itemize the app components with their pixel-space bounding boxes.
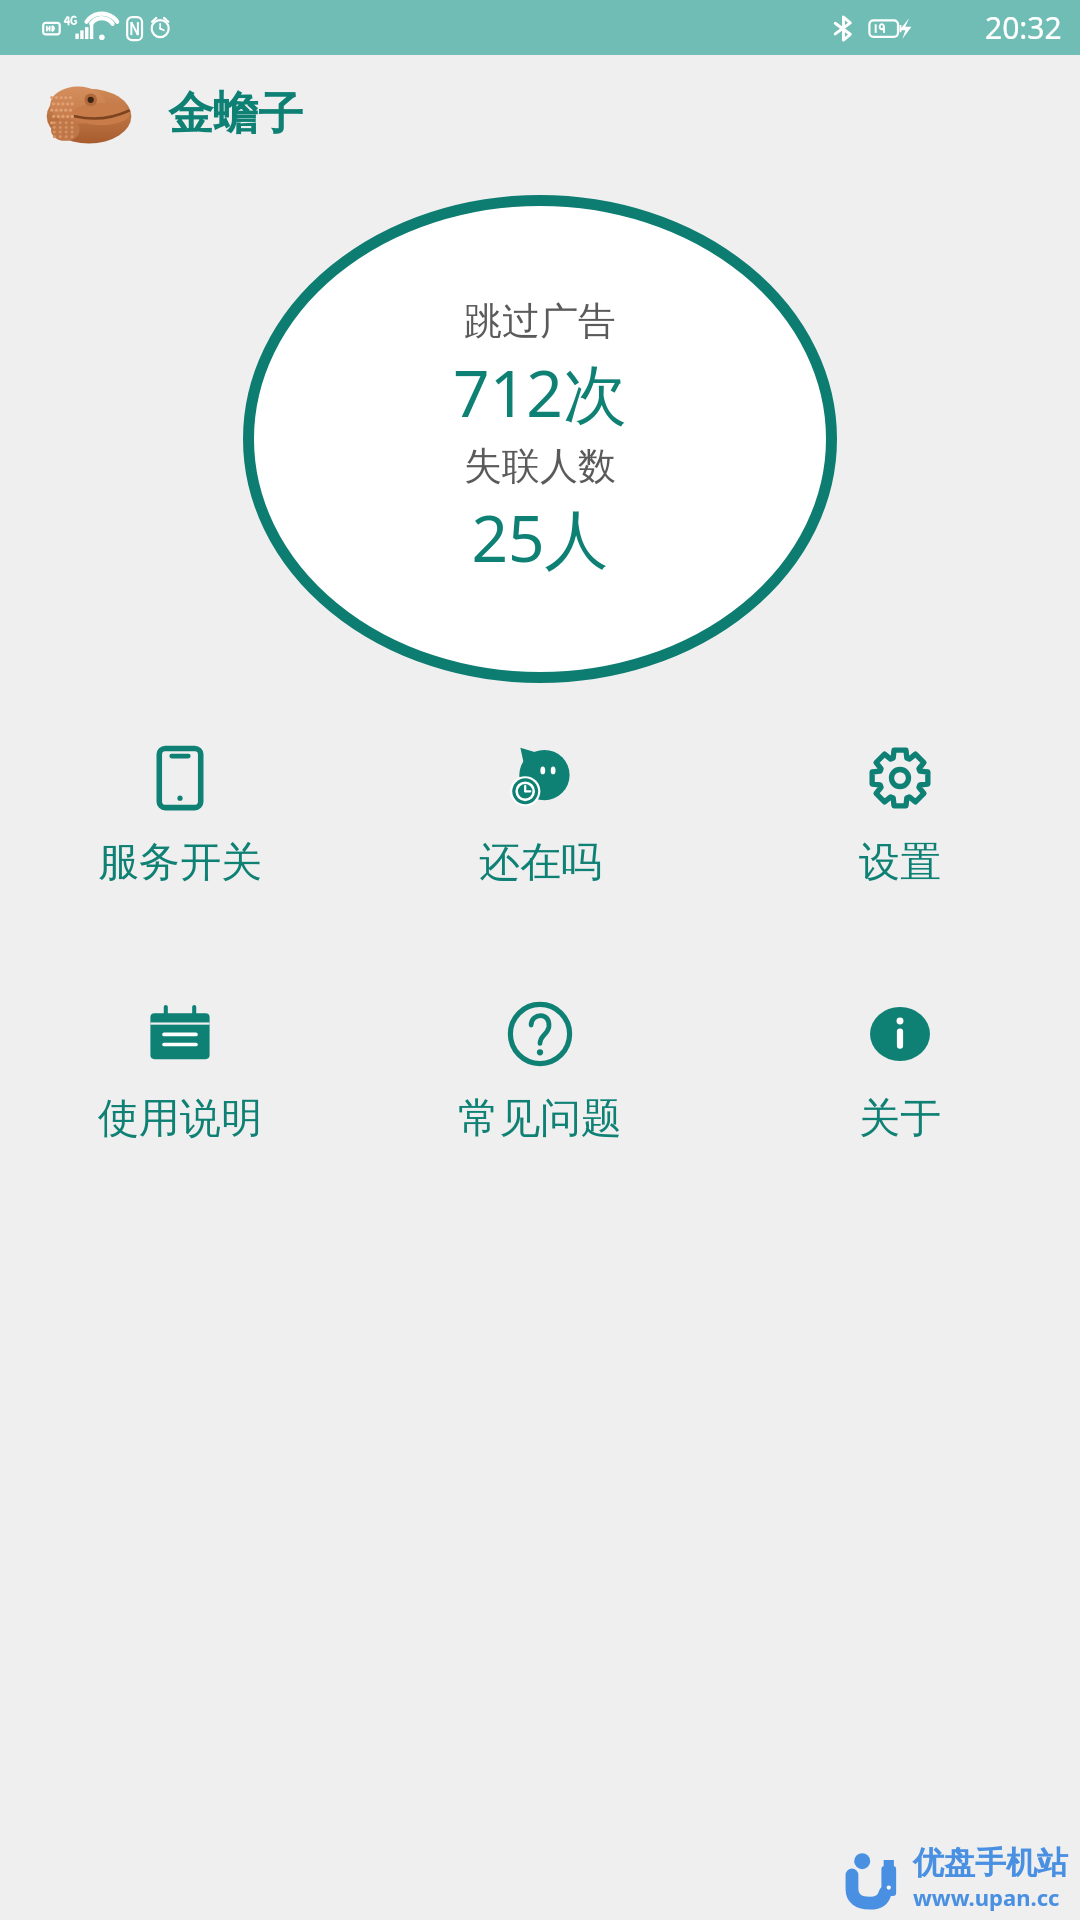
staticText: 20:32 xyxy=(985,7,1062,48)
staticText: 常见问题 xyxy=(458,1093,622,1145)
other: 常见问题 xyxy=(503,997,577,1071)
other: 还在吗 xyxy=(503,741,577,815)
button[interactable]: 关于 xyxy=(720,989,1080,1153)
staticText: 25人 xyxy=(471,494,609,581)
staticText: 服务开关 xyxy=(98,837,262,889)
staticText: 金蟾子 xyxy=(168,86,303,143)
other: 设置 xyxy=(863,741,937,815)
staticText: 还在吗 xyxy=(479,837,602,889)
staticText: 使用说明 xyxy=(98,1093,262,1145)
staticText: 设置 xyxy=(859,837,941,889)
button[interactable]: 服务开关 xyxy=(0,733,360,897)
staticText: www.upan.cc xyxy=(913,1882,1060,1912)
button[interactable]: 使用说明 xyxy=(0,989,360,1153)
staticText: 712次 xyxy=(453,349,627,436)
staticText: 优盘手机站 xyxy=(913,1843,1068,1882)
button[interactable]: 设置 xyxy=(720,733,1080,897)
button[interactable]: 跳过广告 xyxy=(243,195,837,683)
staticText: 关于 xyxy=(859,1093,941,1145)
button[interactable]: 常见问题 xyxy=(360,989,720,1153)
other: 服务开关 xyxy=(143,741,217,815)
staticText: 跳过广告 xyxy=(464,297,616,345)
button[interactable]: 还在吗 xyxy=(360,733,720,897)
other: 使用说明 xyxy=(143,997,217,1071)
staticText: 失联人数 xyxy=(464,442,616,490)
other: 关于 xyxy=(863,997,937,1071)
